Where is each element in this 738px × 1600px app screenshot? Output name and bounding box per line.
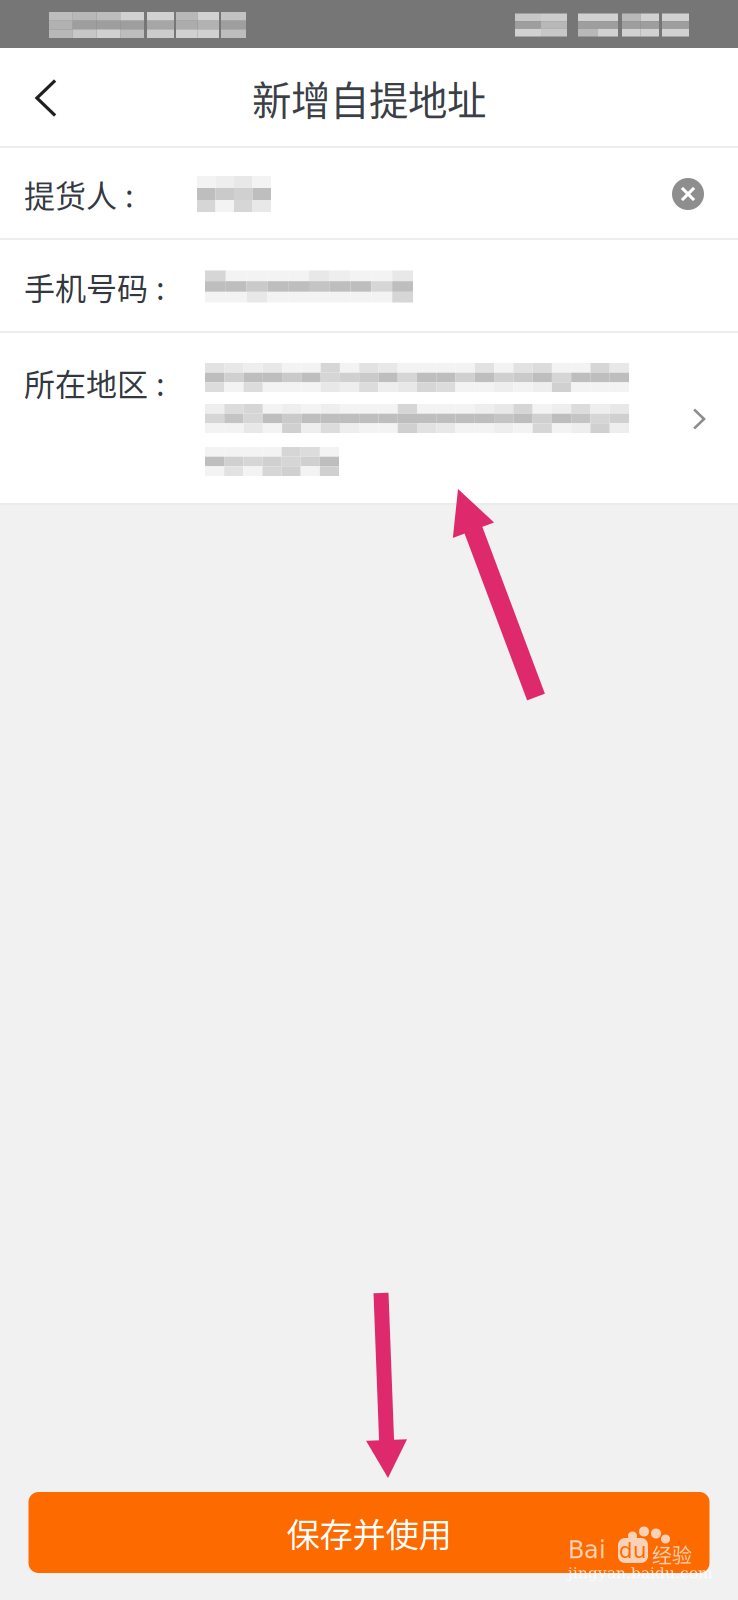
button[interactable]: 保存并使用 — [28, 1492, 709, 1573]
staticText: 新增自提地址 — [252, 69, 486, 126]
staticText: 手机号码 : — [24, 264, 165, 309]
staticText: jingyan.baidu.com — [568, 1564, 713, 1582]
button[interactable]: Clear text — [662, 148, 714, 240]
button[interactable]: 所在地区 : — [0, 333, 738, 505]
staticText: 经验 — [652, 1540, 692, 1569]
staticText: 提货人 : — [24, 171, 134, 216]
staticText: 保存并使用 — [286, 1508, 451, 1557]
staticText: Bai — [568, 1536, 606, 1564]
button[interactable]: Back — [0, 48, 92, 148]
staticText: du — [619, 1538, 647, 1563]
staticText: 所在地区 : — [24, 360, 165, 405]
